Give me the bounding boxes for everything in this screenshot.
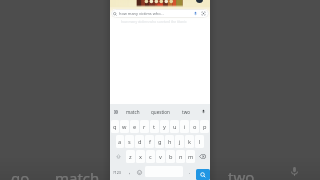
button[interactable]: Shift <box>111 150 125 163</box>
staticText: v <box>159 153 162 161</box>
button[interactable]: d <box>135 135 144 148</box>
button[interactable]: h <box>165 135 174 148</box>
staticText: u <box>173 123 177 131</box>
button[interactable]: Clipboard <box>112 108 120 116</box>
staticText: go <box>11 168 30 180</box>
staticText: q <box>113 123 117 131</box>
button[interactable]: g <box>155 135 164 148</box>
staticText: g <box>158 138 162 146</box>
button[interactable]: match <box>120 104 146 119</box>
button[interactable]: question <box>146 104 174 119</box>
staticText: f <box>149 138 151 146</box>
staticText: s <box>128 138 131 146</box>
button[interactable]: o <box>190 120 199 133</box>
button[interactable]: v <box>156 150 165 163</box>
button[interactable]: , <box>124 164 135 180</box>
button[interactable]: how many victims who survived the titani… <box>121 19 187 23</box>
staticText: k <box>188 138 191 146</box>
button[interactable]: Account <box>196 0 203 3</box>
button[interactable]: Voice search <box>193 11 198 16</box>
button[interactable]: t <box>150 120 159 133</box>
staticText: n <box>179 153 183 161</box>
staticText: b <box>169 153 173 161</box>
button[interactable]: n <box>176 150 185 163</box>
staticText: c <box>149 153 152 161</box>
staticText: e <box>133 123 137 131</box>
button[interactable]: s <box>125 135 134 148</box>
staticText: r <box>143 123 146 131</box>
staticText: two <box>182 109 191 115</box>
staticText: d <box>138 138 142 146</box>
button[interactable]: e <box>130 120 139 133</box>
button[interactable]: . <box>184 164 195 180</box>
button[interactable]: j <box>175 135 184 148</box>
staticText: p <box>203 123 207 131</box>
button[interactable]: l <box>195 135 204 148</box>
button[interactable]: c <box>146 150 155 163</box>
staticText: t <box>153 123 156 131</box>
staticText: w <box>122 123 127 131</box>
button[interactable]: how many victims who... <box>111 9 209 18</box>
button[interactable]: b <box>166 150 175 163</box>
staticText: a <box>118 138 122 146</box>
staticText: how many victims who... <box>119 11 164 16</box>
staticText: i <box>184 123 186 131</box>
button[interactable]: Google Lens <box>201 11 206 16</box>
staticText: ?123 <box>113 170 121 175</box>
button[interactable]: k <box>185 135 194 148</box>
button[interactable]: Search <box>196 169 210 180</box>
staticText: question <box>151 109 170 115</box>
button[interactable]: y <box>160 120 169 133</box>
staticText: match <box>126 109 140 115</box>
staticText: two <box>228 167 255 180</box>
button[interactable]: p <box>200 120 209 133</box>
button[interactable]: q <box>111 120 119 133</box>
button[interactable]: f <box>145 135 154 148</box>
staticText: how many victims who survived the titani… <box>121 19 187 23</box>
button[interactable]: u <box>170 120 179 133</box>
staticText: , <box>129 169 131 176</box>
button[interactable]: r <box>140 120 149 133</box>
button[interactable]: Backspace <box>196 150 209 163</box>
staticText: x <box>139 153 142 161</box>
button[interactable]: a <box>116 135 124 148</box>
staticText: h <box>168 138 172 146</box>
button[interactable]: w <box>120 120 129 133</box>
staticText: match <box>55 168 100 180</box>
button[interactable]: m <box>186 150 195 163</box>
staticText: z <box>129 153 132 161</box>
button[interactable]: Emoji <box>135 164 144 180</box>
staticText: y <box>163 123 166 131</box>
button[interactable]: x <box>136 150 145 163</box>
staticText: . <box>189 169 191 176</box>
staticText: j <box>179 138 181 146</box>
staticText: o <box>193 123 197 131</box>
button[interactable]: Voice input <box>199 107 208 116</box>
button[interactable]: z <box>126 150 135 163</box>
button[interactable]: ?123 <box>110 164 124 180</box>
button[interactable]: two <box>174 104 199 119</box>
staticText: m <box>188 153 194 161</box>
staticText: l <box>199 138 201 146</box>
button[interactable]: i <box>180 120 189 133</box>
